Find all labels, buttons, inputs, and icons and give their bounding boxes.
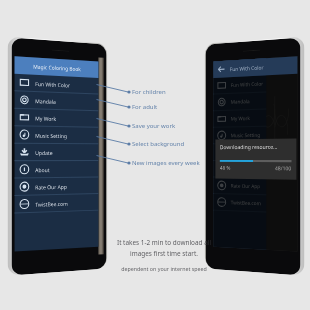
button[interactable]: Rate Our App bbox=[15, 177, 98, 195]
staticText: Save your work bbox=[132, 122, 176, 130]
staticText: dependent on your internet speed bbox=[121, 265, 207, 272]
button[interactable]: Music Setting bbox=[15, 126, 98, 143]
staticText: Magic Coloring Book bbox=[33, 62, 81, 72]
staticText: TwistBee.com bbox=[35, 200, 68, 208]
staticText: Fun With Color bbox=[35, 80, 70, 88]
staticText: TwistBee.com bbox=[231, 199, 261, 207]
staticText: Downloading resource... bbox=[220, 143, 278, 150]
staticText: About bbox=[35, 166, 50, 173]
button[interactable]: About bbox=[15, 161, 98, 178]
button[interactable]: Save your work bbox=[132, 122, 176, 130]
staticText: Rate Our App bbox=[231, 183, 261, 190]
staticText: Music Setting bbox=[231, 132, 261, 139]
staticText: Mandala bbox=[35, 97, 56, 105]
button[interactable]: New images every week bbox=[132, 159, 200, 167]
button[interactable]: For adult bbox=[132, 103, 158, 111]
staticText: It takes 1-2 min to download all images … bbox=[109, 238, 219, 258]
button[interactable]: Select background bbox=[132, 140, 185, 148]
staticText: For adult bbox=[132, 103, 158, 111]
button[interactable]: My Work bbox=[15, 109, 98, 127]
staticText: Update bbox=[35, 149, 53, 156]
staticText: Music Setting bbox=[35, 132, 67, 139]
button[interactable]: Update bbox=[15, 144, 98, 160]
staticText: 48 % bbox=[220, 164, 231, 171]
staticText: My Work bbox=[231, 115, 250, 122]
staticText: For children bbox=[132, 88, 166, 96]
staticText: My Work bbox=[35, 114, 56, 122]
staticText: New images every week bbox=[132, 159, 200, 167]
staticText: Select background bbox=[132, 140, 185, 148]
button[interactable]: For children bbox=[132, 88, 166, 96]
staticText: Mandala bbox=[231, 98, 250, 106]
staticText: Fun With Color bbox=[231, 80, 263, 89]
button[interactable]: Mandala bbox=[15, 91, 98, 110]
button[interactable]: Back bbox=[217, 65, 225, 74]
staticText: Rate Our App bbox=[35, 183, 67, 191]
button[interactable]: Fun With Color bbox=[15, 74, 98, 94]
staticText: Fun With Color bbox=[230, 63, 264, 72]
staticText: 48/100 bbox=[275, 164, 291, 171]
button[interactable]: TwistBee.com bbox=[15, 194, 98, 212]
